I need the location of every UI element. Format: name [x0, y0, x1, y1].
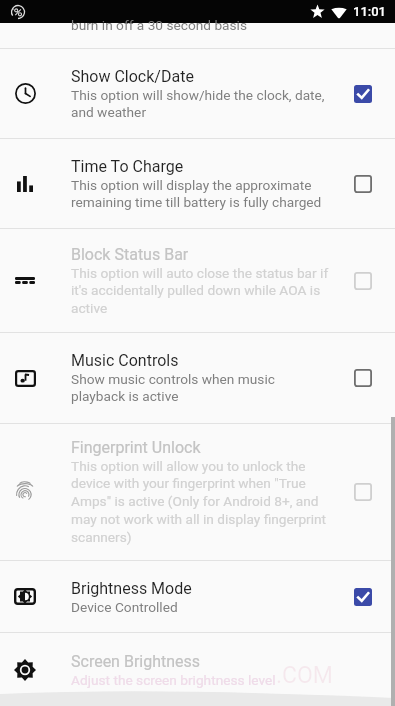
staticText: This option will allow you to unlock the… — [71, 458, 330, 546]
other: Priority mode — [310, 4, 325, 19]
button[interactable]: Block Status Bar — [0, 229, 395, 332]
staticText: This option will display the approximate… — [71, 177, 330, 211]
staticText: Screen Brightness — [71, 652, 201, 671]
staticText: 11:01 — [353, 4, 387, 19]
button[interactable]: Toggle Brightness Mode — [354, 588, 372, 606]
staticText: Device Controlled — [71, 599, 178, 615]
button[interactable]: Music Controls — [0, 333, 395, 423]
staticText: Fingerprint Unlock — [71, 438, 201, 457]
staticText: This option will show/hide the clock, da… — [71, 87, 330, 121]
button[interactable]: Toggle Time To Charge — [354, 175, 372, 193]
button[interactable]: Screen Brightness — [0, 633, 395, 706]
staticText: Time To Charge — [71, 157, 184, 176]
staticText: This option will auto close the status b… — [71, 265, 330, 317]
staticText: Block Status Bar — [71, 245, 189, 264]
button[interactable]: Toggle Fingerprint Unlock — [354, 483, 372, 501]
button[interactable]: Brightness Mode — [0, 561, 395, 632]
other: Wi-Fi signal — [331, 5, 347, 19]
button[interactable]: Time To Charge — [0, 139, 395, 228]
button[interactable]: Toggle Show Clock/Date — [354, 85, 372, 103]
staticText: burn in off a 30 second basis — [71, 17, 247, 33]
staticText: Show music controls when music playback … — [71, 371, 330, 405]
staticText: Show Clock/Date — [71, 67, 194, 86]
staticText: .COM — [276, 662, 333, 689]
button[interactable]: Toggle Block Status Bar — [354, 272, 372, 290]
button[interactable]: Fingerprint Unlock — [0, 424, 395, 560]
button[interactable]: Toggle Music Controls — [354, 369, 372, 387]
button[interactable]: Show Clock/Date — [0, 49, 395, 138]
staticText: Adjust the screen brightness level — [71, 672, 276, 688]
other: Battery percentage — [9, 3, 27, 21]
staticText: Music Controls — [71, 351, 179, 370]
staticText: Brightness Mode — [71, 579, 192, 598]
